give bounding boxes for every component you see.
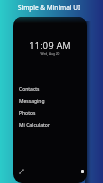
staticText: Simple & Minimal UI	[18, 3, 81, 12]
staticText: Mi Calculator	[19, 122, 50, 129]
button[interactable]: Messaging	[13, 95, 87, 107]
staticText: Wed, Aug 20	[13, 52, 87, 56]
button[interactable]: Mi Calculator	[13, 119, 87, 131]
staticText: Photos	[19, 110, 36, 117]
staticText: Contacts	[19, 86, 40, 93]
button[interactable]: Contacts	[13, 83, 87, 95]
staticText: 11:09 AM	[13, 39, 87, 51]
button[interactable]: Photos	[13, 107, 87, 119]
staticText: Messaging	[19, 98, 45, 105]
button[interactable]: Camera	[77, 166, 87, 176]
button[interactable]: Phone	[16, 166, 26, 176]
